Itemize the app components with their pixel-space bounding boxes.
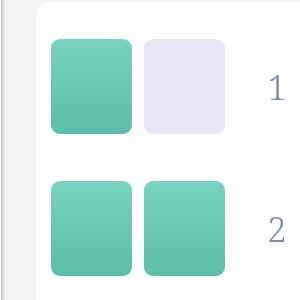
staticText: 2 (267, 206, 287, 252)
button[interactable]: Filled block 1 of row 2 (51, 181, 132, 276)
button[interactable]: Filled block 1 of row 1 (51, 39, 132, 134)
button[interactable]: Filled block 2 of row 2 (144, 181, 225, 276)
staticText: 1 (267, 64, 287, 110)
